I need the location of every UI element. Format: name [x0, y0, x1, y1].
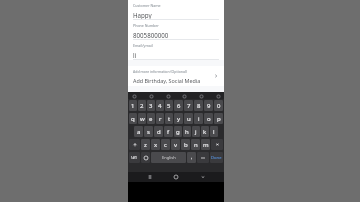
button[interactable]: 3	[147, 100, 155, 111]
staticText: n	[194, 141, 198, 149]
staticText: 2	[140, 102, 144, 110]
button[interactable]: j	[192, 126, 200, 137]
button[interactable]: 9	[204, 100, 213, 111]
button[interactable]: u	[184, 113, 193, 124]
button[interactable]: s	[144, 126, 153, 137]
button[interactable]: m	[201, 139, 210, 150]
staticText: 7	[187, 102, 191, 110]
staticText: g	[176, 128, 180, 136]
button[interactable]: g	[174, 126, 182, 137]
staticText: q	[131, 115, 135, 123]
button[interactable]: Settings	[198, 93, 204, 99]
button[interactable]: 1	[129, 100, 137, 111]
staticText: 5	[167, 102, 171, 110]
staticText: c	[164, 141, 167, 149]
button[interactable]: h	[183, 126, 191, 137]
button[interactable]: 8	[194, 100, 203, 111]
button[interactable]: v	[171, 139, 180, 150]
button[interactable]: t	[165, 113, 173, 124]
button[interactable]: i	[194, 113, 203, 124]
button[interactable]: l	[210, 126, 218, 137]
button[interactable]: 7	[184, 100, 193, 111]
button[interactable]: !#1	[129, 152, 140, 163]
button[interactable]: x	[151, 139, 160, 150]
staticText: m	[203, 141, 209, 149]
staticText: Add Birthday, Social Media Handle &	[133, 77, 210, 84]
button[interactable]: Backspace	[211, 139, 223, 150]
staticText: i	[198, 115, 200, 123]
button[interactable]: Search	[131, 93, 137, 99]
staticText: x	[154, 141, 158, 149]
staticText: h	[185, 128, 189, 136]
button[interactable]: Shift	[129, 139, 140, 150]
staticText: 1	[131, 102, 135, 110]
button[interactable]: GIF	[148, 93, 154, 99]
staticText: !#1	[131, 155, 138, 161]
staticText: 8	[197, 102, 201, 110]
button[interactable]: y	[174, 113, 183, 124]
staticText: 9	[207, 102, 211, 110]
staticText: Add more information (Optional)	[133, 69, 187, 74]
staticText: s	[147, 128, 150, 136]
staticText: t	[168, 115, 171, 123]
staticText: r	[159, 115, 162, 123]
button[interactable]: More	[215, 93, 221, 99]
button[interactable]: Customer Name	[128, 0, 224, 20]
button[interactable]: Email/ymail	[128, 40, 224, 60]
button[interactable]: Phone Number	[128, 20, 224, 40]
staticText: 3	[149, 102, 153, 110]
staticText: Happy	[133, 11, 152, 19]
button[interactable]: b	[181, 139, 190, 150]
staticText: l	[213, 128, 215, 136]
staticText: z	[144, 141, 147, 149]
staticText: ,	[191, 154, 193, 161]
button[interactable]: 0	[214, 100, 223, 111]
staticText: 6	[177, 102, 181, 110]
staticText: e	[149, 115, 153, 123]
button[interactable]: Space	[151, 152, 186, 163]
button[interactable]: Voice input	[181, 93, 187, 99]
other: Expand	[213, 73, 219, 79]
button[interactable]: Emoji	[141, 152, 150, 163]
staticText: Done	[211, 155, 222, 161]
button[interactable]: Sticker	[165, 93, 171, 99]
button[interactable]: 4	[156, 100, 164, 111]
staticText: u	[187, 115, 191, 123]
button[interactable]: Back	[198, 172, 208, 182]
button[interactable]: r	[156, 113, 164, 124]
button[interactable]: 5	[165, 100, 173, 111]
staticText: w	[140, 115, 145, 123]
staticText: y	[177, 115, 181, 123]
staticText: o	[207, 115, 211, 123]
button[interactable]: n	[191, 139, 200, 150]
staticText: a	[137, 128, 141, 136]
button[interactable]: Done	[210, 152, 223, 163]
button[interactable]: 6	[174, 100, 183, 111]
button[interactable]: ,	[187, 152, 196, 163]
button[interactable]: Next field	[197, 152, 209, 163]
button[interactable]: d	[154, 126, 163, 137]
button[interactable]: w	[138, 113, 146, 124]
button[interactable]: p	[214, 113, 223, 124]
button[interactable]: q	[129, 113, 137, 124]
button[interactable]: o	[204, 113, 213, 124]
staticText: Customer Name	[133, 3, 161, 8]
button[interactable]: 2	[138, 100, 146, 111]
staticText: p	[217, 115, 221, 123]
button[interactable]: Recents	[145, 172, 155, 182]
button[interactable]: z	[141, 139, 150, 150]
button[interactable]: Add more information (Optional)	[128, 66, 224, 86]
staticText: li	[133, 51, 137, 59]
staticText: 8005800000	[133, 31, 169, 39]
staticText: 0	[217, 102, 221, 110]
button[interactable]: k	[201, 126, 209, 137]
staticText: 4	[158, 102, 162, 110]
button[interactable]: Home	[171, 172, 181, 182]
button[interactable]: f	[164, 126, 173, 137]
button[interactable]: a	[134, 126, 143, 137]
staticText: Email/ymail	[133, 43, 153, 48]
button[interactable]: c	[161, 139, 170, 150]
staticText: Phone Number	[133, 23, 159, 28]
button[interactable]: e	[147, 113, 155, 124]
staticText: j	[195, 128, 197, 136]
